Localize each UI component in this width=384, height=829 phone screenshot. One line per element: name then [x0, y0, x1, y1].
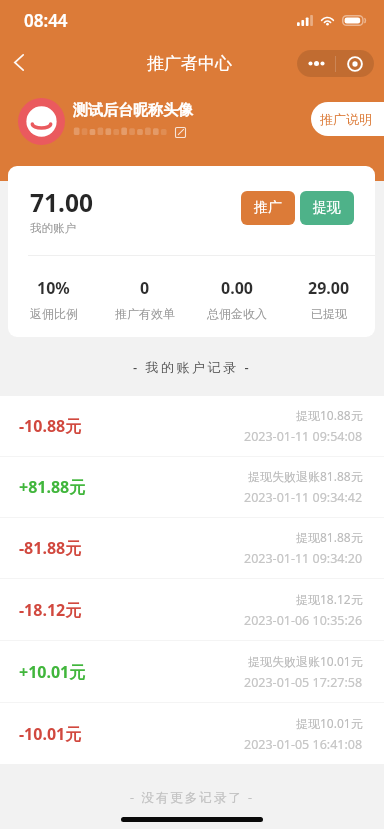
staticText: 0 — [140, 277, 150, 299]
button[interactable]: -10.88元 — [0, 396, 384, 456]
staticText: 测试后台昵称头像 — [73, 101, 193, 120]
staticText: 推广说明 — [320, 111, 372, 127]
staticText: 提现81.88元 — [296, 529, 363, 545]
staticText: - 没有更多记录了 - — [130, 789, 255, 806]
button[interactable]: 推广说明 — [311, 102, 384, 136]
staticText: 我的账户 — [30, 221, 76, 235]
staticText: 已提现 — [311, 306, 347, 321]
staticText: 2023-01-11 09:54:08 — [244, 428, 363, 445]
staticText: 2023-01-05 17:27:58 — [244, 674, 363, 691]
button[interactable]: -18.12元 — [0, 579, 384, 640]
staticText: 2023-01-06 10:35:26 — [244, 612, 363, 629]
staticText: 推广 — [254, 199, 282, 217]
staticText: 71.00 — [30, 186, 93, 219]
staticText: 推广者中心 — [147, 53, 232, 74]
staticText: 29.00 — [308, 277, 350, 299]
button[interactable]: 提现 — [300, 191, 354, 225]
button[interactable]: +81.88元 — [0, 457, 384, 517]
staticText: +81.88元 — [19, 476, 86, 498]
staticText: 提现 — [313, 199, 341, 217]
button[interactable]: -10.01元 — [0, 703, 384, 764]
staticText: -10.88元 — [19, 415, 82, 437]
staticText: -18.12元 — [19, 599, 82, 621]
staticText: 2023-01-05 16:41:08 — [244, 736, 363, 753]
staticText: -81.88元 — [19, 537, 82, 559]
staticText: 2023-01-11 09:34:42 — [244, 489, 363, 506]
staticText: 2023-01-11 09:34:20 — [244, 550, 363, 567]
staticText: 总佣金收入 — [207, 306, 267, 321]
staticText: 提现18.12元 — [296, 591, 363, 607]
staticText: +10.01元 — [19, 661, 86, 683]
button[interactable]: More options — [297, 50, 374, 77]
staticText: 提现10.01元 — [296, 715, 363, 731]
staticText: 提现10.88元 — [296, 407, 363, 423]
button[interactable]: Back — [1, 40, 37, 84]
button[interactable]: 推广 — [241, 191, 295, 225]
staticText: 08:44 — [24, 9, 68, 32]
staticText: -10.01元 — [19, 723, 82, 745]
staticText: - 我的账户记录 - — [133, 358, 252, 376]
staticText: 提现失败退账10.01元 — [248, 653, 363, 669]
button[interactable]: +10.01元 — [0, 641, 384, 702]
staticText: 10% — [37, 277, 70, 299]
staticText: 0.00 — [221, 277, 253, 299]
staticText: 返佣比例 — [30, 306, 78, 321]
staticText: 提现失败退账81.88元 — [248, 468, 363, 484]
button[interactable]: -81.88元 — [0, 518, 384, 578]
staticText: 推广有效单 — [115, 306, 175, 321]
